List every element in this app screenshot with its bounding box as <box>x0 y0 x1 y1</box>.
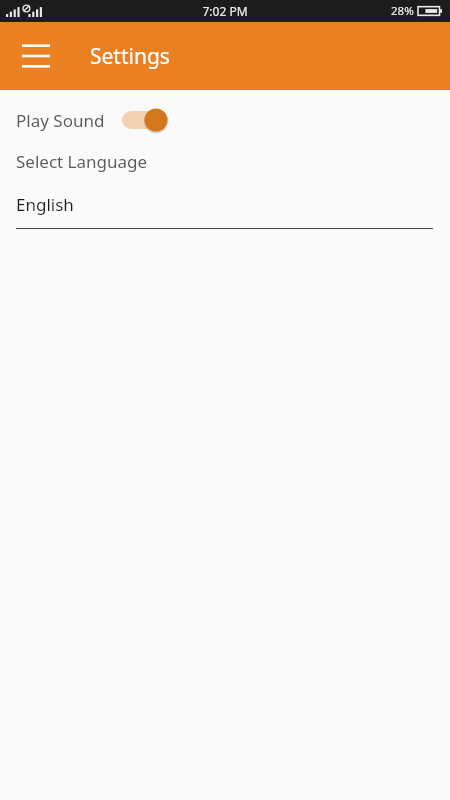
staticText: 7:02 PM <box>202 3 248 19</box>
button[interactable]: Play Sound <box>0 102 450 138</box>
staticText: English <box>16 193 74 216</box>
button[interactable]: Play Sound toggle, on <box>122 107 168 133</box>
staticText: Select Language <box>16 150 148 173</box>
button[interactable]: English <box>16 193 433 229</box>
staticText: 28% <box>391 3 414 19</box>
button[interactable]: Open navigation menu <box>10 30 62 82</box>
staticText: Settings <box>90 42 170 71</box>
staticText: Play Sound <box>16 109 105 132</box>
